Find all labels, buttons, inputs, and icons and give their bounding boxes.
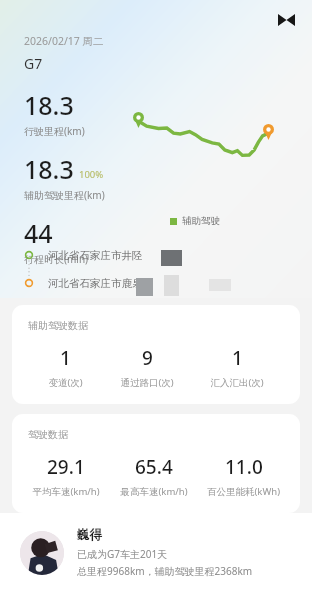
staticText: 44 bbox=[24, 216, 53, 250]
staticText: 65.4 bbox=[135, 454, 173, 480]
staticText: 1 bbox=[60, 345, 71, 371]
staticText: 9 bbox=[142, 345, 153, 371]
staticText: 汇入汇出(次) bbox=[210, 376, 264, 389]
staticText: 行驶里程(km) bbox=[24, 124, 85, 138]
staticText: 驾驶数据 bbox=[28, 428, 68, 441]
staticText: 18.3 bbox=[24, 88, 74, 122]
staticText: 河北省石家庄市鹿泉 bbox=[48, 277, 143, 290]
staticText: 变道(次) bbox=[48, 376, 83, 389]
staticText: 巍得 bbox=[77, 527, 102, 543]
staticText: 河北省石家庄市井陉 bbox=[48, 249, 143, 262]
staticText: 辅助驾驶里程(km) bbox=[24, 188, 105, 202]
staticText: 100% bbox=[79, 168, 104, 181]
button[interactable]: 辅助驾驶 bbox=[170, 215, 220, 227]
staticText: 通过路口(次) bbox=[120, 376, 174, 389]
staticText: 辅助驾驶 bbox=[182, 215, 220, 227]
staticText: 29.1 bbox=[47, 454, 85, 480]
staticText: 行程时长(min) bbox=[24, 252, 89, 266]
button[interactable]: 巍得 bbox=[0, 513, 312, 592]
button[interactable]: Share trip bbox=[272, 6, 300, 34]
button[interactable]: 辅助驾驶数据 bbox=[12, 305, 300, 404]
staticText: 百公里能耗(kWh) bbox=[207, 485, 280, 498]
staticText: 已成为G7车主201天 bbox=[77, 547, 168, 561]
staticText: 11.0 bbox=[225, 454, 263, 480]
staticText: 最高车速(km/h) bbox=[120, 485, 188, 498]
staticText: 平均车速(km/h) bbox=[32, 485, 100, 498]
staticText: G7 bbox=[24, 54, 43, 73]
staticText: 辅助驾驶数据 bbox=[28, 319, 88, 332]
staticText: 2026/02/17 周二 bbox=[24, 34, 104, 48]
staticText: 总里程9968km，辅助驾驶里程2368km bbox=[77, 564, 253, 578]
button[interactable]: 驾驶数据 bbox=[12, 414, 300, 513]
staticText: 1 bbox=[232, 345, 243, 371]
staticText: 18.3 bbox=[24, 152, 74, 186]
